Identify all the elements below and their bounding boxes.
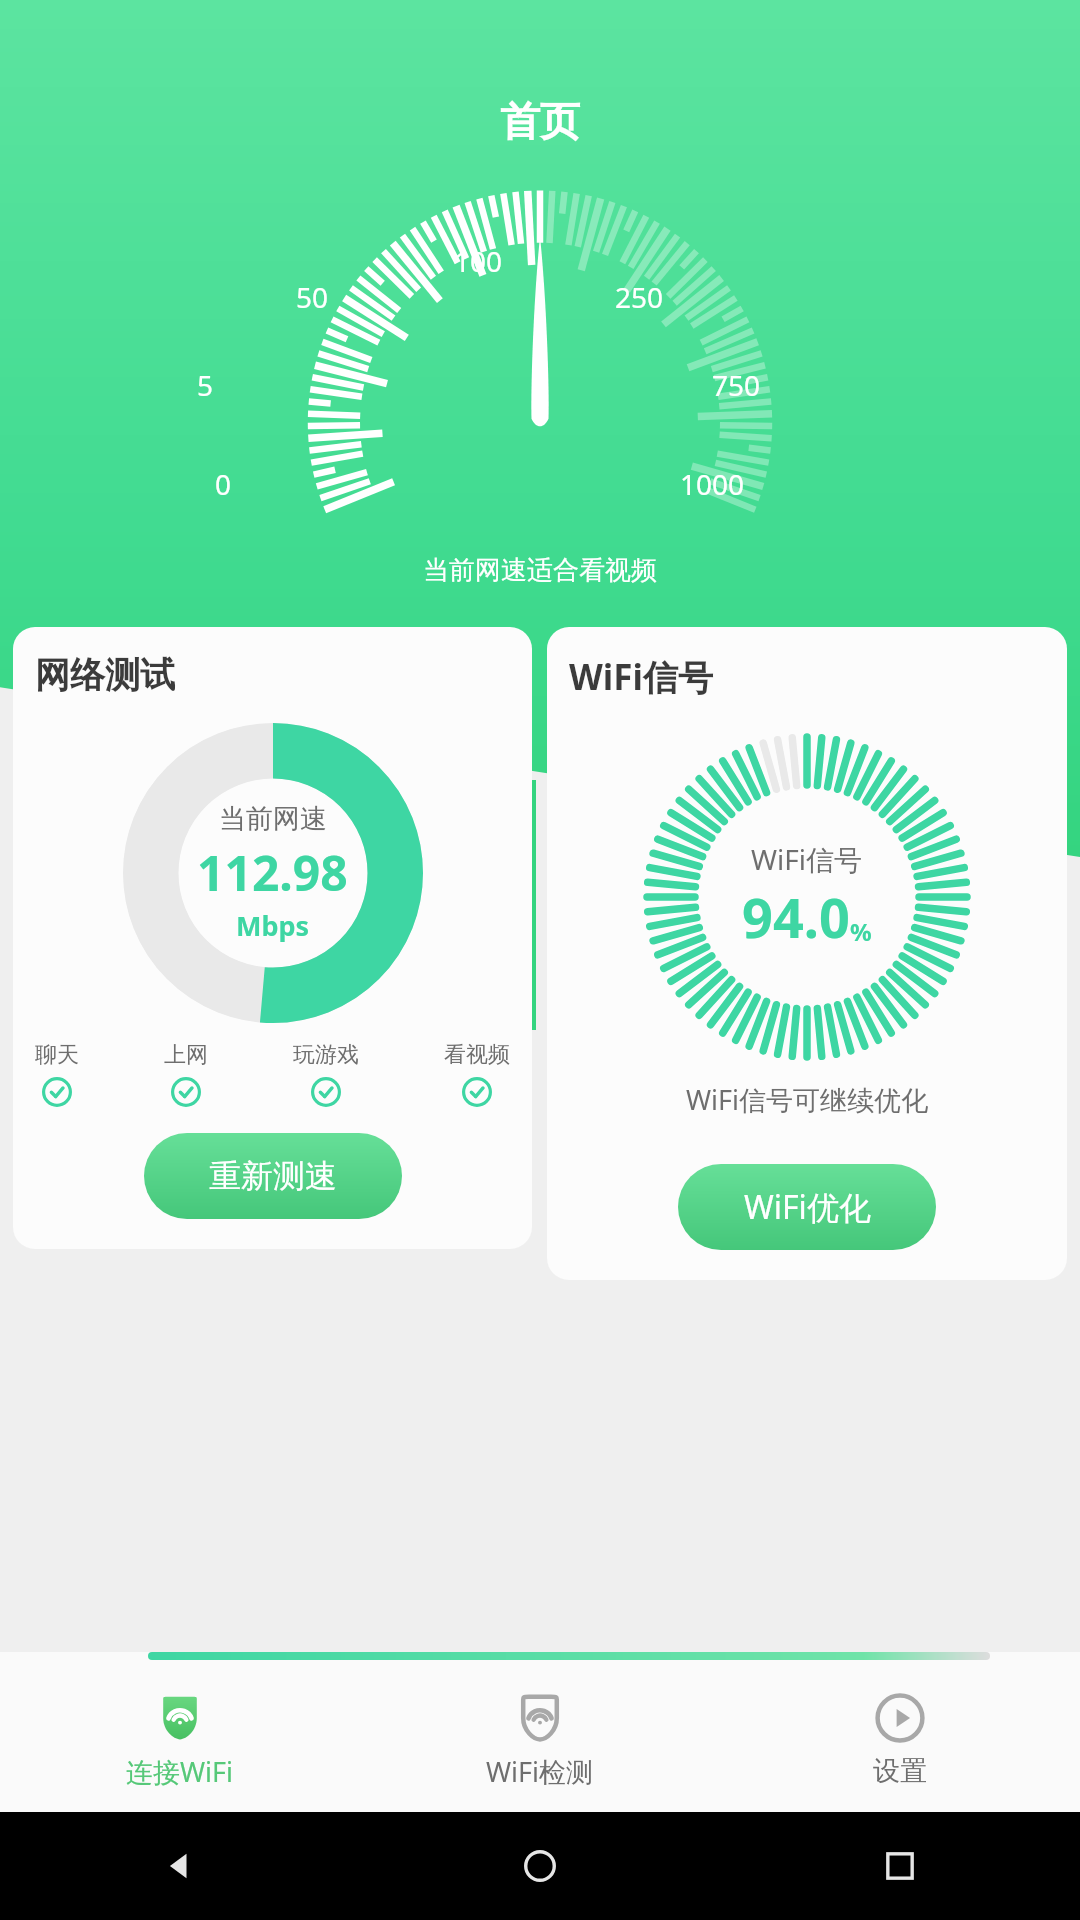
button[interactable]: 连接WiFi (0, 1666, 360, 1812)
staticText: 750 (712, 366, 761, 404)
staticText: WiFi信号可继续优化 (686, 1081, 929, 1118)
staticText: 0 (215, 465, 232, 503)
staticText: 上网 (164, 1041, 208, 1069)
staticText: 5 (197, 366, 214, 404)
staticText: % (850, 915, 872, 948)
staticText: 94.0 (742, 880, 850, 954)
button[interactable]: WiFi优化 (678, 1164, 936, 1250)
staticText: 重新测速 (209, 1156, 337, 1196)
staticText: WiFi优化 (744, 1185, 871, 1229)
staticText: 50 (296, 278, 329, 316)
staticText: 250 (615, 278, 664, 316)
button[interactable]: 重新测速 (144, 1133, 402, 1219)
staticText: WiFi检测 (486, 1753, 594, 1790)
staticText: 首页 (500, 96, 580, 146)
staticText: 玩游戏 (293, 1041, 359, 1069)
staticText: WiFi信号 (569, 653, 713, 701)
staticText: 网络测试 (35, 653, 175, 697)
staticText: 100 (454, 242, 503, 280)
staticText: 看视频 (444, 1041, 510, 1069)
staticText: 连接WiFi (126, 1753, 234, 1790)
staticText: Mbps (236, 907, 310, 944)
staticText: 聊天 (35, 1041, 79, 1069)
staticText: 当前网速适合看视频 (423, 554, 657, 587)
staticText: 设置 (873, 1754, 927, 1788)
staticText: WiFi信号 (751, 840, 863, 878)
button[interactable]: WiFi检测 (360, 1666, 720, 1812)
staticText: 112.98 (197, 840, 348, 905)
button[interactable]: 网络测试 (13, 627, 532, 1249)
button[interactable]: WiFi信号 (547, 627, 1067, 1280)
staticText: 当前网速 (219, 802, 327, 836)
button[interactable]: 设置 (720, 1666, 1080, 1812)
staticText: 1000 (680, 465, 745, 503)
